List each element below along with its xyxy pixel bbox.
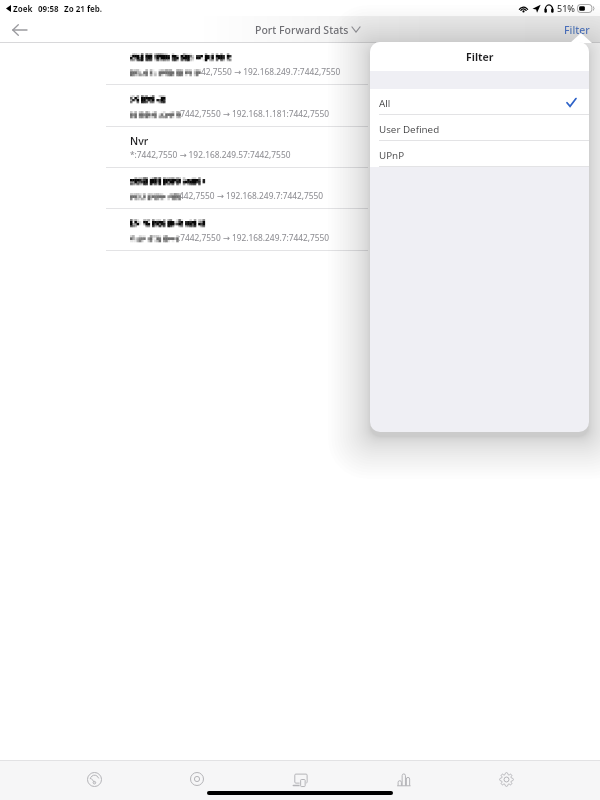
staticText: Port Forward Stats [255,23,349,37]
button[interactable]: Back [6,16,32,43]
button[interactable]: All [370,89,589,115]
button[interactable]: Nvr [0,126,600,167]
staticText: :7442,7550 → 192.168.249.7:7442,7550 [178,232,330,243]
button[interactable]: Devices [272,762,328,792]
staticText: All [379,97,391,110]
staticText: *:7442,7550 → 192.168.249.57:7442,7550 [130,149,291,160]
staticText: UPnP [379,149,405,162]
staticText: 42,7550 → 192.168.249.7:7442,7550 [201,66,341,77]
button[interactable]: User Defined [370,115,589,141]
button[interactable]: :7442,7550 → 192.168.249.7:7442,7550 [0,209,600,250]
staticText: 09:58 [38,3,59,14]
staticText: Filter [466,50,494,64]
staticText: User Defined [379,123,440,136]
staticText: Zoek [13,3,33,14]
button[interactable]: Statistics [375,762,431,792]
button[interactable]: :7442,7550 → 192.168.1.181:7442,7550 [0,85,600,126]
button[interactable]: 442,7550 → 192.168.249.7:7442,7550 [0,167,600,208]
button[interactable]: Settings [478,762,534,792]
button[interactable]: 42,7550 → 192.168.249.7:7442,7550 [0,43,600,84]
button[interactable]: Filter [564,16,590,43]
staticText: 51% [557,2,575,14]
button[interactable]: Ping [169,762,225,792]
button[interactable]: UPnP [370,141,589,167]
staticText: Nvr [130,134,149,148]
staticText: 442,7550 → 192.168.249.7:7442,7550 [179,190,324,201]
staticText: :7442,7550 → 192.168.1.181:7442,7550 [178,108,330,119]
staticText: Filter [564,23,590,37]
staticText: Zo 21 feb. [64,3,103,14]
button[interactable]: Speed test [66,762,122,792]
